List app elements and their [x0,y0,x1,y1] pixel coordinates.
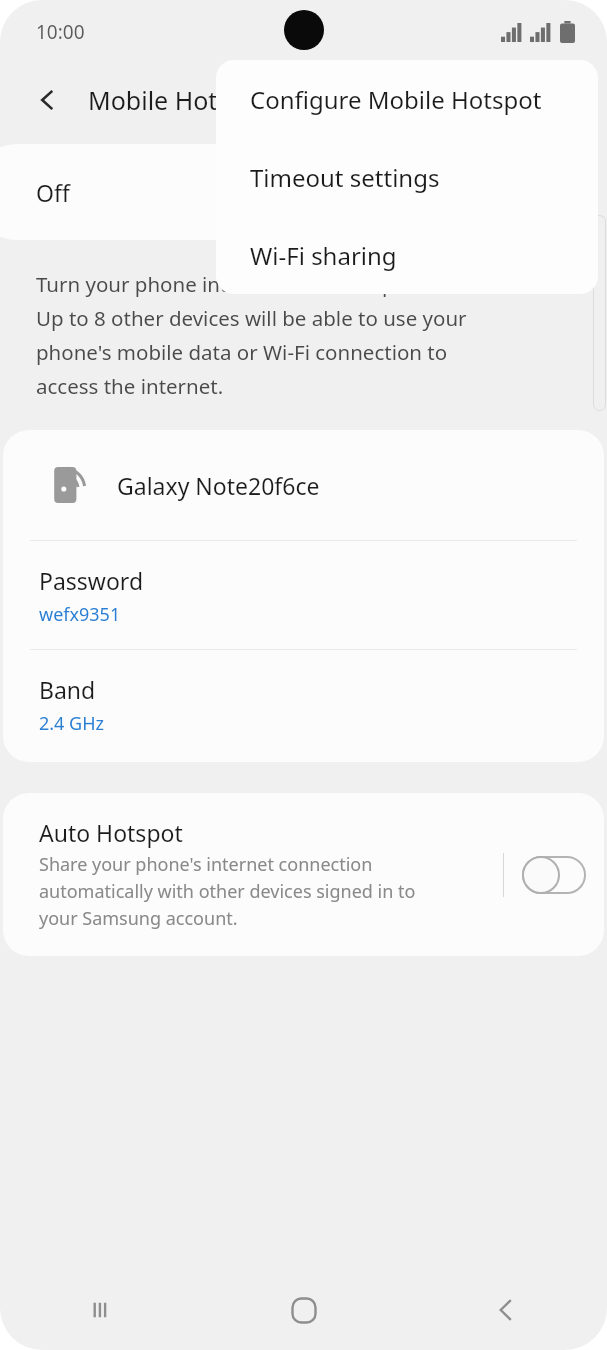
button[interactable]: Home [203,1270,405,1350]
staticText: Mobile Hotspot [88,83,269,117]
staticText: Off [36,177,70,208]
staticText: wefx9351 [39,602,121,627]
staticText: Galaxy Note20f6ce [117,470,320,501]
staticText: 10:00 [36,19,85,45]
staticText: Band [39,674,96,705]
staticText: 2.4 GHz [39,711,104,736]
staticText: Configure Mobile Hotspot [250,83,542,116]
staticText: Password [39,565,144,596]
button[interactable]: Auto Hotspot toggle [522,856,586,894]
staticText: Turn your phone into a Wi-Fi access poin… [36,270,467,400]
button[interactable]: Auto Hotspot [3,793,604,956]
button[interactable]: Band [3,650,604,762]
button[interactable]: Back [24,76,72,124]
staticText: Timeout settings [250,161,440,194]
button[interactable]: Configure Mobile Hotspot [216,60,598,138]
button[interactable]: Off [0,144,577,240]
staticText: Auto Hotspot [39,817,183,848]
button[interactable]: Wi-Fi sharing [216,216,598,294]
button[interactable]: Password [3,541,604,649]
button[interactable]: Recent apps [0,1270,203,1350]
button[interactable]: Back [405,1270,607,1350]
staticText: Share your phone's internet connection a… [39,852,416,930]
button[interactable]: Galaxy Note20f6ce [3,430,604,540]
staticText: Wi-Fi sharing [250,239,397,272]
button[interactable]: Timeout settings [216,138,598,216]
